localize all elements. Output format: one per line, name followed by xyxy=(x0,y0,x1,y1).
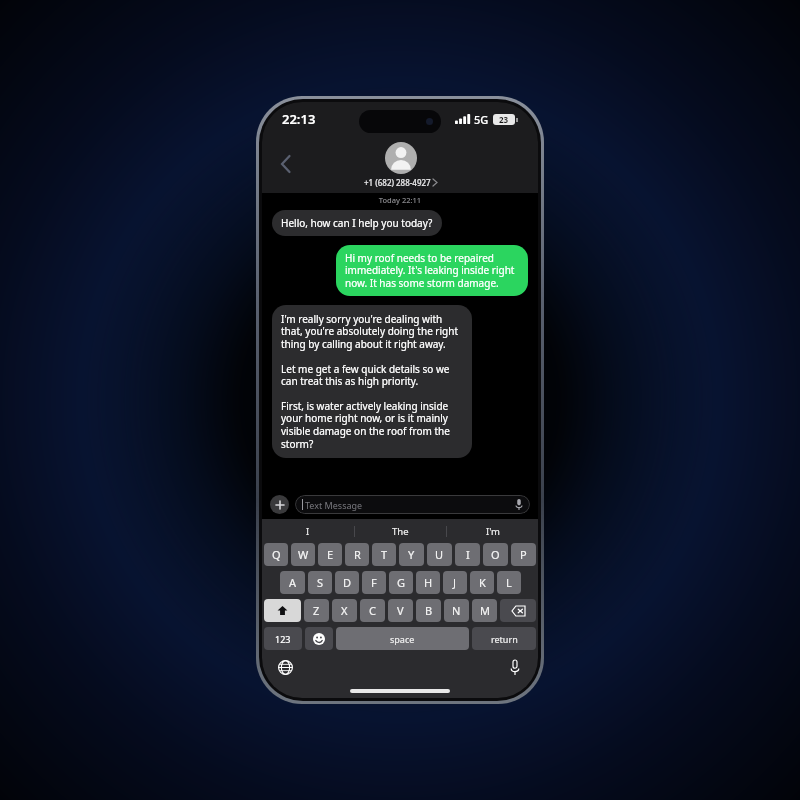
staticText: Today 22:11 xyxy=(272,195,528,205)
button[interactable]: I xyxy=(455,543,480,566)
staticText: H xyxy=(424,575,433,590)
button[interactable]: A xyxy=(280,571,305,594)
staticText: +1 (682) 288-4927 xyxy=(364,177,431,188)
button[interactable]: R xyxy=(345,543,369,566)
button[interactable]: Back xyxy=(272,150,300,178)
staticText: T xyxy=(381,547,388,562)
button[interactable]: Text Message xyxy=(295,495,530,514)
staticText: U xyxy=(435,547,444,562)
button[interactable]: I'm really sorry you're dealing with tha… xyxy=(272,305,472,458)
staticText: W xyxy=(298,547,309,562)
staticText: B xyxy=(425,603,433,618)
staticText: D xyxy=(343,575,352,590)
staticText: 123 xyxy=(275,633,291,645)
staticText: L xyxy=(506,575,512,590)
button[interactable]: Dictate xyxy=(504,656,526,678)
button[interactable]: Y xyxy=(399,543,424,566)
staticText: Hello, how can I help you today? xyxy=(281,216,433,230)
button[interactable]: Backspace xyxy=(500,599,536,622)
button[interactable]: K xyxy=(470,571,494,594)
button[interactable]: Add attachment xyxy=(270,495,289,514)
button[interactable]: 123 xyxy=(264,627,302,650)
staticText: Text Message xyxy=(305,499,363,511)
staticText: Hi my roof needs to be repaired immediat… xyxy=(345,251,519,290)
staticText: K xyxy=(479,575,486,590)
button[interactable]: E xyxy=(318,543,342,566)
staticText: R xyxy=(354,547,361,562)
button[interactable]: B xyxy=(416,599,441,622)
button[interactable]: M xyxy=(472,599,497,622)
staticText: I xyxy=(306,525,310,538)
staticText: space xyxy=(390,633,415,645)
staticText: S xyxy=(317,575,324,590)
staticText: 22:13 xyxy=(282,110,316,128)
staticText: X xyxy=(341,603,348,618)
button[interactable]: Shift xyxy=(264,599,301,622)
button[interactable]: Emoji xyxy=(305,627,333,650)
staticText: O xyxy=(491,547,500,562)
button[interactable]: The xyxy=(355,519,446,543)
staticText: C xyxy=(369,603,376,618)
staticText: The xyxy=(392,525,409,538)
button[interactable]: +1 (682) 288-4927 xyxy=(364,142,437,188)
staticText: 5G xyxy=(474,112,489,127)
staticText: First, is water actively leaking inside … xyxy=(281,399,463,451)
button[interactable]: Switch keyboard xyxy=(274,656,296,678)
button[interactable]: space xyxy=(336,627,469,650)
staticText: G xyxy=(397,575,406,590)
button[interactable]: Z xyxy=(304,599,329,622)
staticText: N xyxy=(452,603,461,618)
staticText: I xyxy=(466,547,470,562)
button[interactable]: T xyxy=(372,543,396,566)
button[interactable]: G xyxy=(389,571,413,594)
staticText: I'm really sorry you're dealing with tha… xyxy=(281,312,463,351)
staticText: P xyxy=(520,547,527,562)
button[interactable]: Hi my roof needs to be repaired immediat… xyxy=(336,245,528,296)
button[interactable]: H xyxy=(416,571,440,594)
button[interactable]: I xyxy=(262,519,354,543)
button[interactable]: P xyxy=(511,543,536,566)
staticText: Q xyxy=(272,547,281,562)
button[interactable]: Q xyxy=(264,543,288,566)
button[interactable]: I'm xyxy=(447,519,538,543)
staticText: E xyxy=(327,547,334,562)
staticText: A xyxy=(289,575,297,590)
staticText: Z xyxy=(313,603,320,618)
staticText: 23 xyxy=(499,114,509,125)
button[interactable]: L xyxy=(497,571,521,594)
button[interactable]: S xyxy=(308,571,332,594)
button[interactable]: O xyxy=(483,543,508,566)
staticText: V xyxy=(397,603,404,618)
button[interactable]: Hello, how can I help you today? xyxy=(272,210,442,236)
staticText: J xyxy=(453,575,457,590)
staticText: F xyxy=(371,575,377,590)
staticText: return xyxy=(491,633,518,645)
button[interactable]: V xyxy=(388,599,413,622)
staticText: Y xyxy=(408,547,415,562)
button[interactable]: W xyxy=(291,543,315,566)
staticText: Let me get a few quick details so we can… xyxy=(281,362,463,388)
staticText: M xyxy=(480,603,490,618)
button[interactable]: C xyxy=(360,599,385,622)
button[interactable]: return xyxy=(472,627,536,650)
button[interactable]: X xyxy=(332,599,357,622)
button[interactable]: U xyxy=(427,543,452,566)
button[interactable]: N xyxy=(444,599,469,622)
staticText: I'm xyxy=(486,525,500,538)
button[interactable]: J xyxy=(443,571,467,594)
button[interactable]: D xyxy=(335,571,359,594)
button[interactable]: F xyxy=(362,571,386,594)
